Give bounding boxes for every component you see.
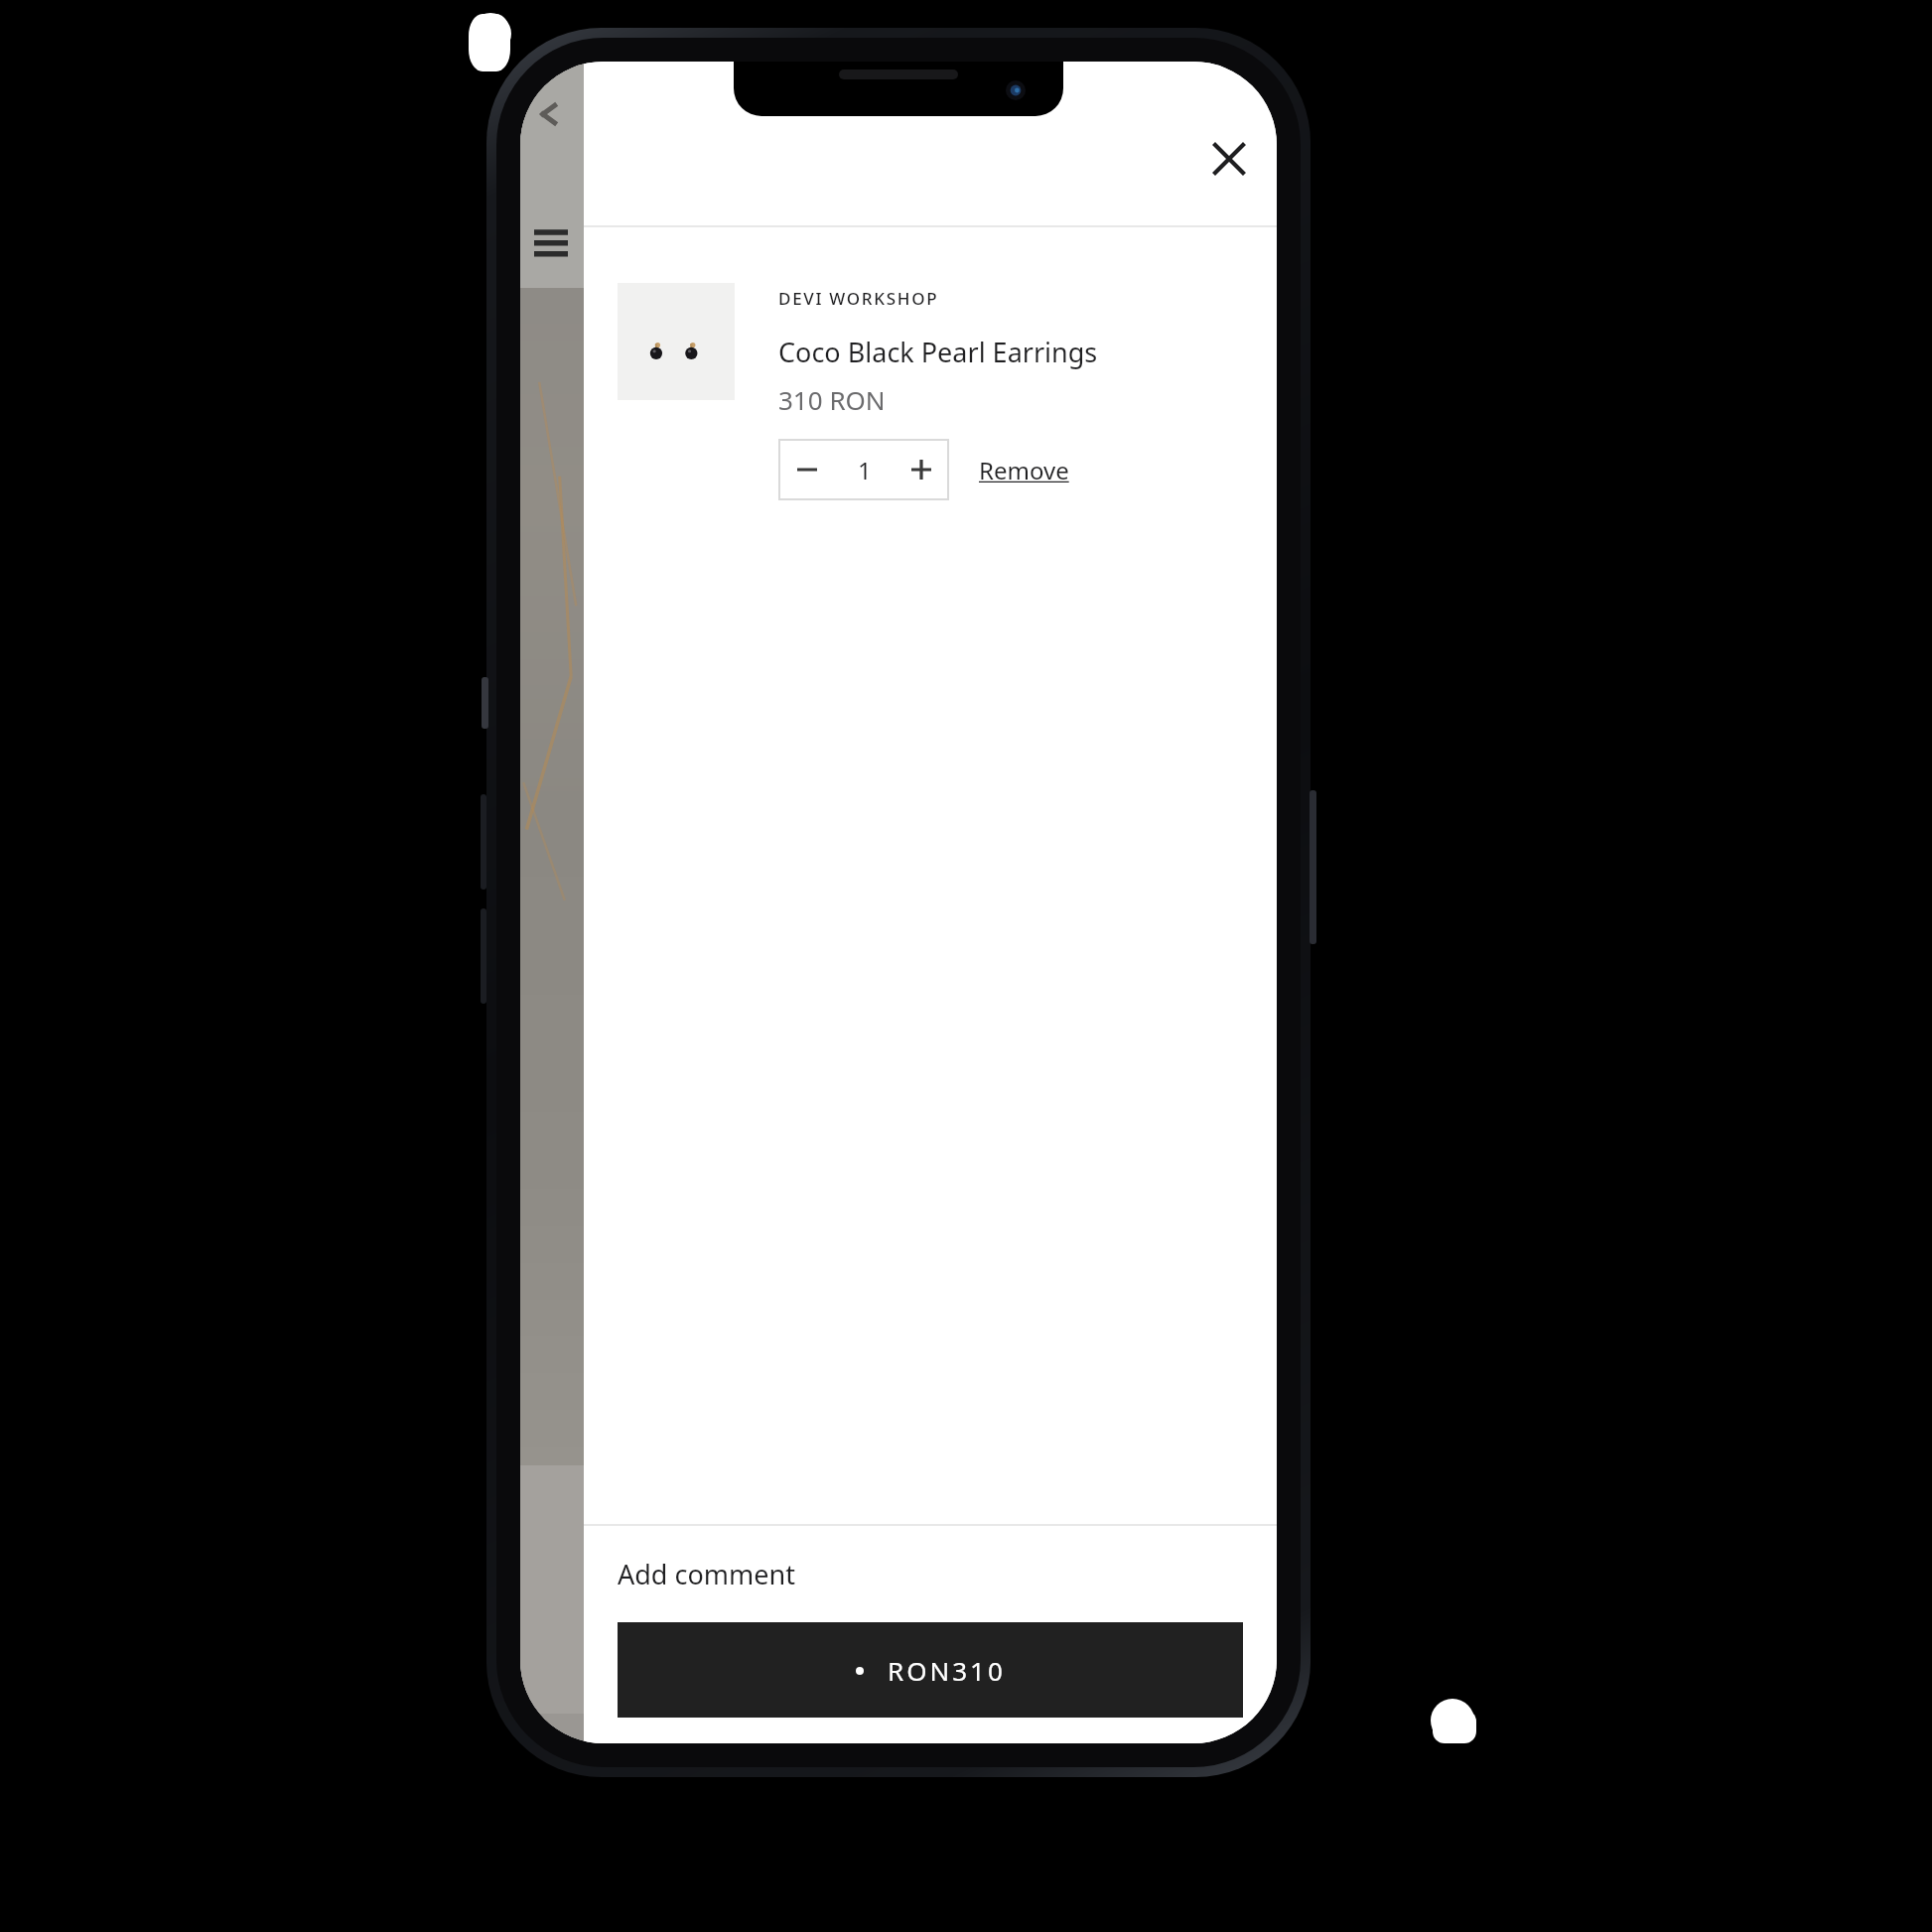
button[interactable]: Remove	[973, 446, 1075, 494]
staticText: Coco Black Pearl Earrings	[778, 334, 1098, 370]
other: Back	[536, 101, 562, 127]
button[interactable]: Decrease quantity	[778, 439, 836, 500]
staticText: Remove	[979, 454, 1069, 486]
staticText: RON310	[888, 1653, 1006, 1688]
other: Menu	[534, 230, 568, 256]
button[interactable]: Increase quantity	[893, 439, 949, 500]
button[interactable]: Close	[1203, 133, 1255, 185]
button[interactable]: RON310	[618, 1622, 1243, 1718]
staticText: 1	[858, 454, 872, 486]
button[interactable]	[618, 283, 735, 400]
staticText: 310 RON	[778, 382, 886, 417]
button[interactable]: Add comment	[584, 1526, 1277, 1622]
staticText: Add comment	[618, 1556, 795, 1592]
staticText: DEVI WORKSHOP	[778, 287, 939, 310]
